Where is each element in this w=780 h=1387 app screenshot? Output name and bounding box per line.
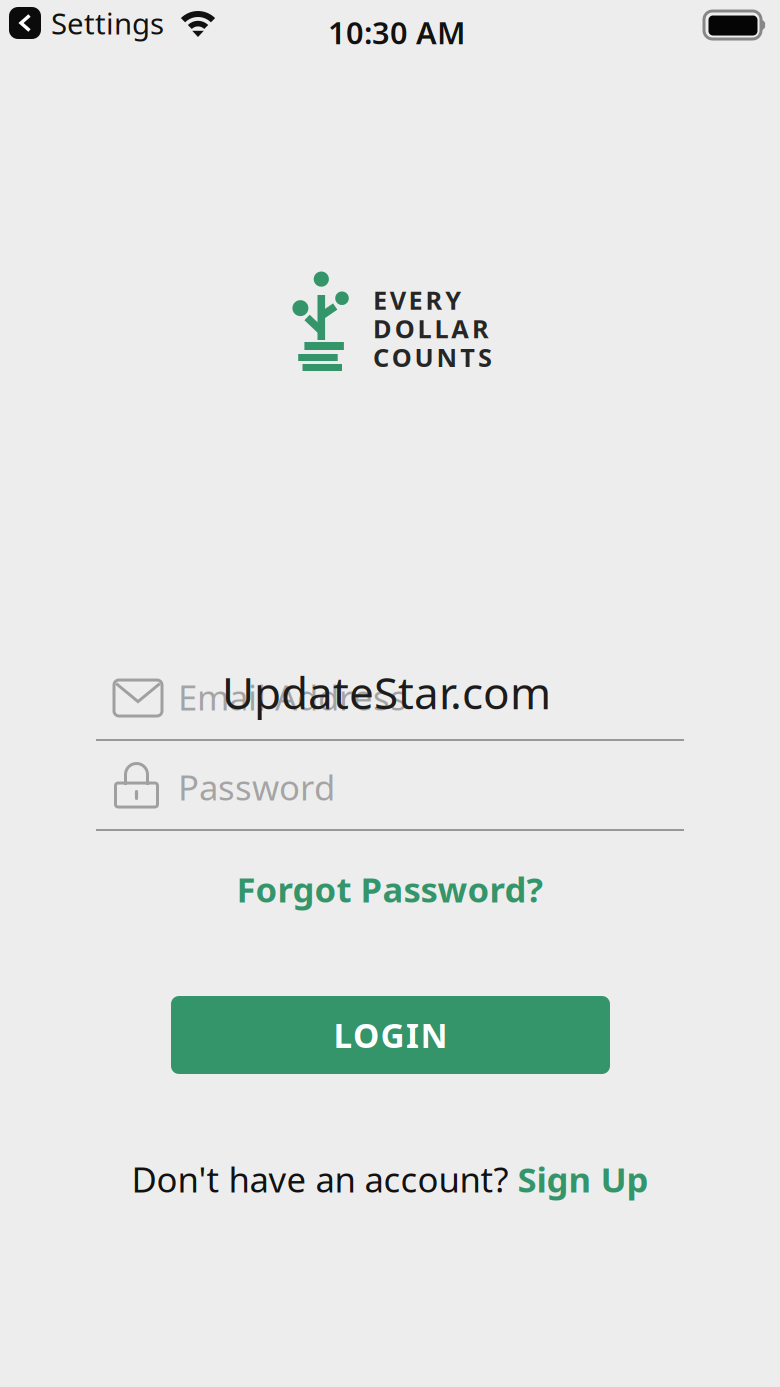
staticText: DOLLAR — [373, 312, 489, 345]
staticText: 10:30 AM — [328, 12, 465, 53]
button[interactable]: Email Address — [96, 680, 684, 741]
staticText: Sign Up — [517, 1156, 648, 1202]
button[interactable]: Sign Up — [517, 1156, 648, 1202]
button[interactable]: Password — [96, 770, 684, 831]
button[interactable]: Forgot Password? — [210, 862, 570, 916]
button[interactable]: LOGIN — [171, 996, 610, 1074]
button[interactable]: Back to Settings — [0, 0, 170, 46]
staticText: LOGIN — [333, 1013, 447, 1057]
staticText: Settings — [51, 3, 164, 42]
staticText: Email Address — [178, 674, 407, 720]
staticText: UpdateStar.com — [222, 663, 551, 721]
staticText: Password — [178, 764, 335, 810]
staticText: EVERY — [373, 283, 461, 317]
staticText: Forgot Password? — [236, 866, 543, 912]
staticText: COUNTS — [373, 340, 492, 374]
staticText: Don't have an account? — [131, 1156, 517, 1202]
